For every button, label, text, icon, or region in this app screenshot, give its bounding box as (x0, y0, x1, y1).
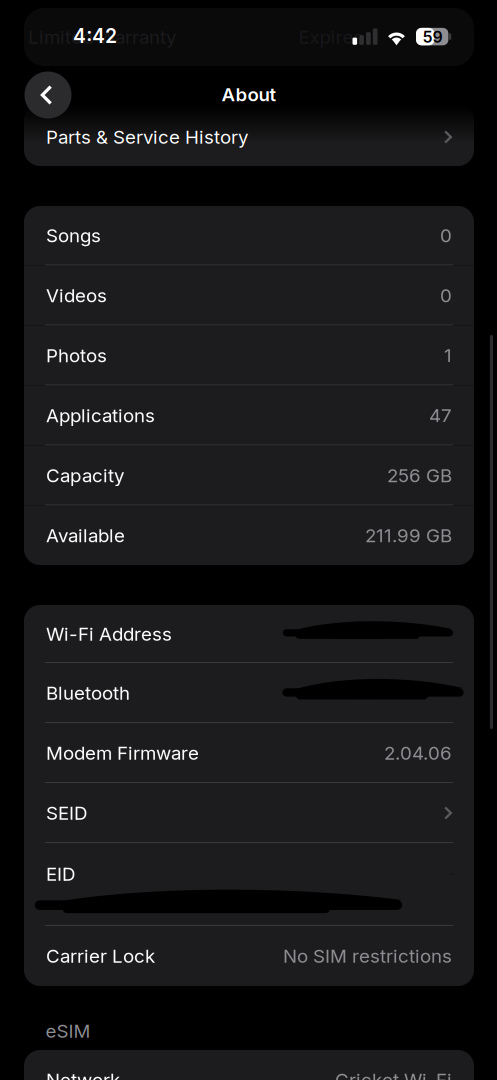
staticText: Photos (46, 344, 107, 367)
staticText: Wi-Fi Address (46, 623, 172, 645)
button[interactable]: SEID (24, 783, 474, 843)
staticText: Expires (298, 26, 363, 48)
staticText: 0 (440, 284, 452, 307)
staticText: EID (46, 863, 75, 885)
staticText: 0 (440, 224, 452, 247)
button[interactable]: Songs (24, 205, 474, 265)
staticText: Applications (46, 404, 155, 427)
button[interactable]: Modem Firmware (24, 723, 474, 783)
button[interactable]: Videos (24, 265, 474, 325)
button[interactable]: Photos (24, 325, 474, 385)
staticText: 256 GB (387, 464, 452, 487)
button[interactable]: Capacity (24, 445, 474, 505)
staticText: 211.99 GB (365, 524, 452, 547)
staticText: Cricket Wi-Fi (335, 1069, 452, 1080)
button[interactable]: Network (24, 1050, 474, 1080)
staticText: Songs (46, 224, 101, 247)
staticText: Parts & Service History (46, 126, 248, 148)
staticText: 47 (429, 404, 452, 427)
staticText: SEID (46, 802, 87, 824)
staticText: Network (46, 1069, 120, 1080)
staticText: Videos (46, 284, 107, 307)
button[interactable]: Applications (24, 385, 474, 445)
staticText: Carrier Lock (46, 945, 155, 967)
staticText: 59 (422, 27, 442, 47)
button[interactable]: EID (24, 843, 474, 926)
staticText: About (221, 83, 276, 106)
staticText: Capacity (46, 464, 124, 487)
staticText: Bluetooth (46, 682, 130, 704)
button[interactable]: Available (24, 505, 474, 565)
button[interactable]: Carrier Lock (24, 926, 474, 986)
staticText: Limited Warranty (28, 26, 176, 48)
staticText: 4:42 (73, 24, 117, 48)
staticText: eSIM (45, 1020, 90, 1042)
button[interactable]: Parts & Service History (24, 104, 474, 166)
staticText: 1 (444, 344, 452, 367)
button[interactable]: Bluetooth (24, 663, 474, 723)
button[interactable]: Wi-Fi Address (24, 605, 474, 663)
staticText: 2.04.06 (384, 742, 452, 764)
staticText: Available (46, 524, 125, 547)
button[interactable]: Back (24, 71, 71, 118)
staticText: Modem Firmware (46, 742, 199, 764)
staticText: No SIM restrictions (283, 945, 452, 967)
